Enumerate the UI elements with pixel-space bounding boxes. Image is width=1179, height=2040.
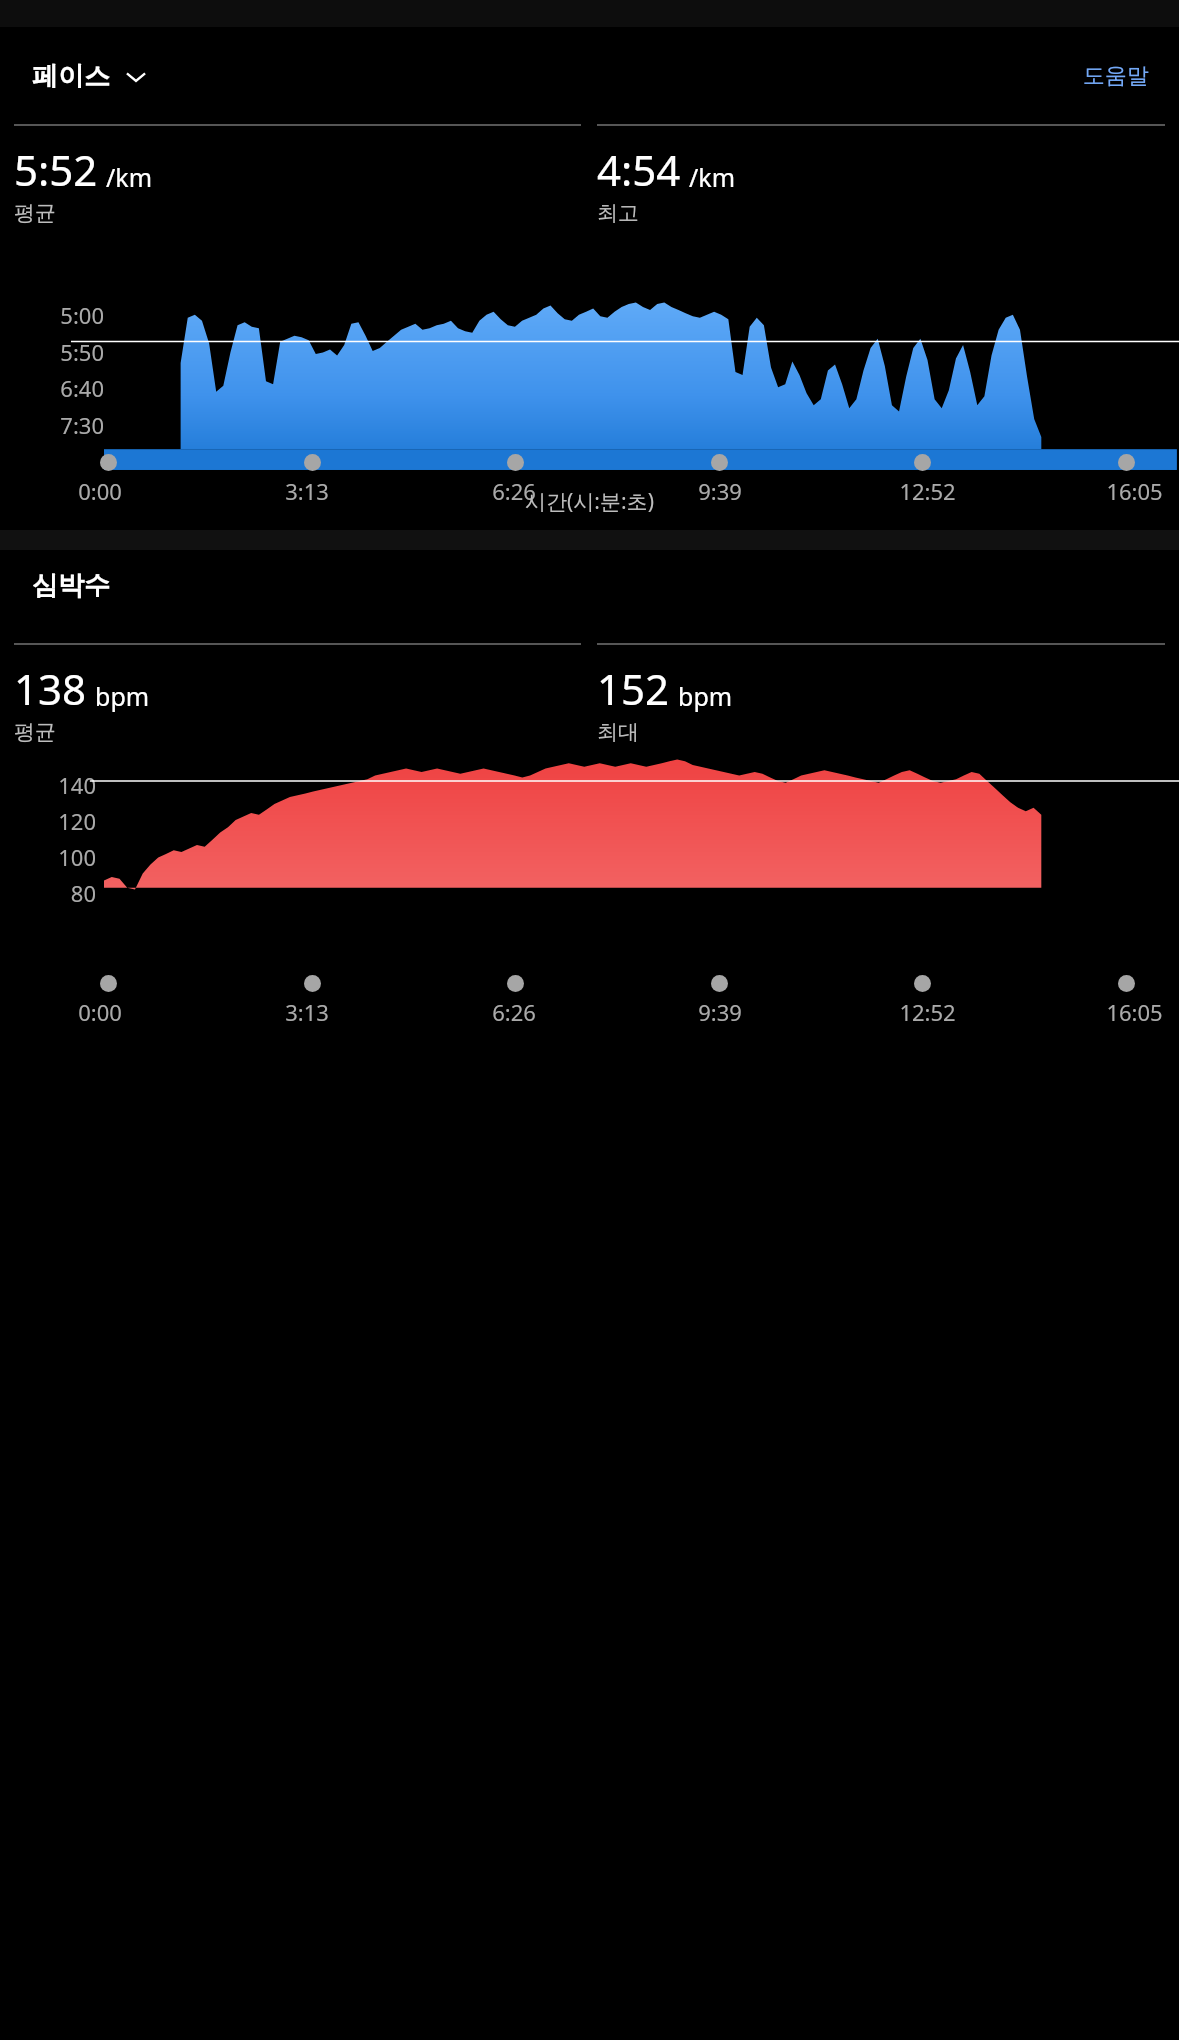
staticText: 140 xyxy=(0,770,96,800)
button[interactable]: 4:54 xyxy=(597,124,1165,226)
staticText: 100 xyxy=(0,842,96,872)
staticText: 5:50 xyxy=(0,337,104,367)
staticText: 12:52 xyxy=(899,476,956,506)
staticText: 16:05 xyxy=(1106,476,1163,506)
staticText: 도움말 xyxy=(1083,62,1149,90)
staticText: 16:05 xyxy=(1106,997,1163,1027)
staticText: 9:39 xyxy=(698,997,742,1027)
staticText: 페이스 xyxy=(32,60,110,93)
staticText: 12:52 xyxy=(899,997,956,1027)
staticText: 152 xyxy=(597,660,670,717)
staticText: 6:26 xyxy=(492,476,536,506)
staticText: 80 xyxy=(0,878,96,908)
staticText: 0:00 xyxy=(78,476,122,506)
staticText: 120 xyxy=(0,806,96,836)
button[interactable]: 5:52 xyxy=(14,124,581,226)
staticText: 0:00 xyxy=(78,997,122,1027)
staticText: 9:39 xyxy=(698,476,742,506)
button[interactable]: 페이스 xyxy=(32,60,148,93)
staticText: /km xyxy=(689,160,736,194)
staticText: bpm xyxy=(95,679,150,713)
staticText: 5:52 xyxy=(14,141,98,198)
staticText: 최고 xyxy=(597,200,639,226)
staticText: 7:30 xyxy=(0,410,104,440)
staticText: 6:40 xyxy=(0,373,104,403)
staticText: 6:26 xyxy=(492,997,536,1027)
staticText: 4:54 xyxy=(597,141,681,198)
staticText: 심박수 xyxy=(32,569,110,602)
staticText: 평균 xyxy=(14,719,56,745)
staticText: 3:13 xyxy=(285,476,329,506)
button[interactable]: 152 xyxy=(597,643,1165,745)
staticText: 평균 xyxy=(14,200,56,226)
staticText: 5:00 xyxy=(0,300,104,330)
staticText: 3:13 xyxy=(285,997,329,1027)
staticText: 138 xyxy=(14,660,87,717)
button[interactable]: 138 xyxy=(14,643,581,745)
staticText: bpm xyxy=(678,679,733,713)
staticText: 시간(시:분:초) xyxy=(0,487,1179,516)
staticText: /km xyxy=(106,160,153,194)
other: 차트 종류 선택 xyxy=(124,65,148,89)
staticText: 최대 xyxy=(597,719,639,745)
button[interactable]: 도움말 xyxy=(1053,52,1179,100)
